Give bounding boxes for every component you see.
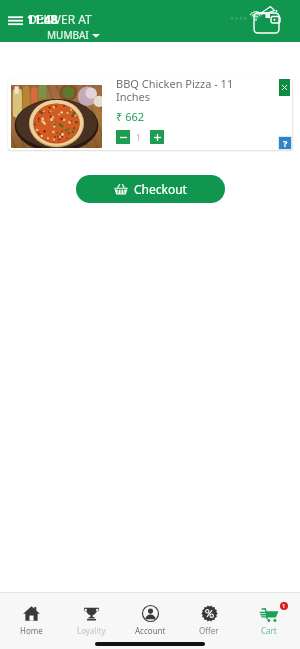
staticText: Account xyxy=(135,625,166,636)
staticText: BBQ Chicken Pizza - 11 Inches xyxy=(116,76,262,104)
staticText: Offer xyxy=(199,625,219,636)
staticText: Loyality xyxy=(77,625,106,636)
staticText: ₹ 662 xyxy=(116,109,145,124)
button[interactable]: Home xyxy=(3,605,59,636)
button[interactable]: Checkout xyxy=(76,175,225,203)
staticText: 1 xyxy=(136,132,141,143)
staticText: 11:48 xyxy=(27,11,58,27)
button[interactable]: Account xyxy=(122,605,178,636)
button[interactable]: Remove item xyxy=(279,79,290,96)
button[interactable]: Offer xyxy=(181,605,237,636)
staticText: 1 xyxy=(282,602,286,610)
staticText: Checkout xyxy=(134,181,187,197)
button[interactable]: Menu xyxy=(6,14,25,27)
staticText: Home xyxy=(20,625,43,636)
staticText: MUMBAI xyxy=(47,28,89,42)
button[interactable]: MUMBAI xyxy=(47,28,100,42)
button[interactable]: Help xyxy=(279,137,291,149)
button[interactable]: Loyality xyxy=(63,605,119,636)
staticText: ? xyxy=(283,137,288,149)
button[interactable]: 1 xyxy=(241,605,297,636)
staticText: Cart xyxy=(261,625,277,636)
button[interactable]: Increase quantity xyxy=(150,130,164,144)
button[interactable]: Wallet xyxy=(250,2,286,36)
button[interactable]: Decrease quantity xyxy=(116,130,130,144)
staticText: DELIVER AT xyxy=(28,11,92,27)
